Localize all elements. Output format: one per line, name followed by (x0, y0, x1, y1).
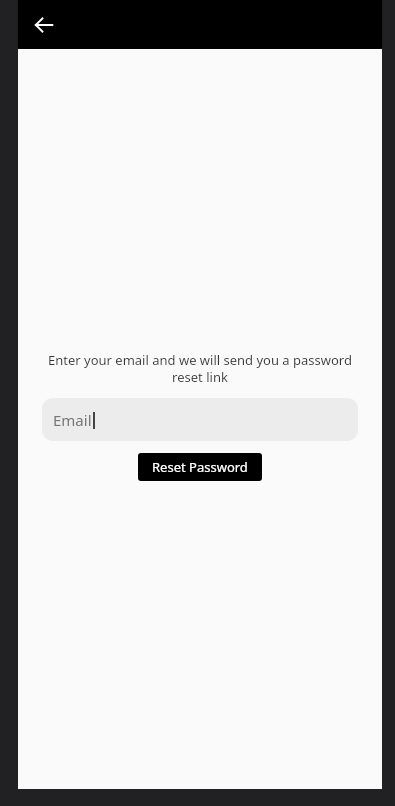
button[interactable]: Email (42, 398, 358, 441)
button[interactable]: Reset Password (138, 453, 262, 481)
staticText: Reset Password (152, 458, 248, 476)
staticText: Email (53, 410, 92, 430)
button[interactable]: Back (24, 5, 64, 45)
staticText: Enter your email and we will send you a … (42, 351, 358, 386)
